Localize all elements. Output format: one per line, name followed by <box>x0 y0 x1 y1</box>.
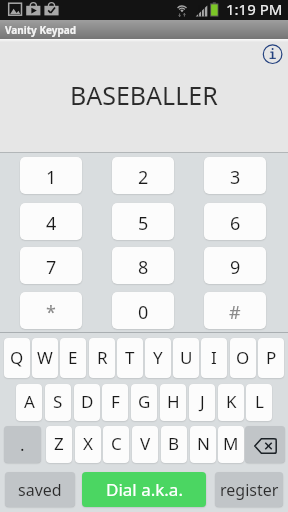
staticText: Y <box>153 346 163 369</box>
button[interactable]: 8 <box>112 247 174 284</box>
button[interactable]: 3 <box>204 157 266 194</box>
staticText: E <box>68 346 78 369</box>
staticText: H <box>167 390 180 413</box>
button[interactable]: H <box>160 384 186 421</box>
staticText: 0 <box>138 300 149 325</box>
staticText: 1 <box>46 165 57 190</box>
button[interactable]: . <box>4 426 41 463</box>
staticText: A <box>24 390 35 413</box>
staticText: V <box>140 432 151 455</box>
staticText: 7 <box>46 255 57 280</box>
button[interactable]: X <box>75 426 101 463</box>
staticText: P <box>266 346 277 369</box>
button[interactable]: T <box>117 338 143 378</box>
staticText: I <box>211 346 217 369</box>
button[interactable]: J <box>189 384 215 421</box>
staticText: * <box>46 300 56 325</box>
staticText: . <box>20 433 25 456</box>
button[interactable]: saved <box>5 472 75 507</box>
staticText: N <box>197 432 210 455</box>
button[interactable]: * <box>20 292 82 329</box>
staticText: saved <box>18 479 62 501</box>
staticText: D <box>81 390 94 413</box>
staticText: Dial a.k.a. <box>106 478 183 501</box>
button[interactable]: B <box>161 426 187 463</box>
staticText: register <box>220 479 279 501</box>
button[interactable]: Y <box>145 338 171 378</box>
staticText: G <box>138 390 151 413</box>
staticText: Z <box>54 432 64 455</box>
staticText: X <box>83 432 93 455</box>
staticText: K <box>226 390 237 413</box>
button[interactable]: V <box>132 426 158 463</box>
button[interactable]: S <box>45 384 71 421</box>
button[interactable]: 2 <box>112 157 174 194</box>
staticText: C <box>111 432 122 455</box>
staticText: F <box>111 390 120 413</box>
staticText: # <box>229 300 241 325</box>
staticText: 5 <box>138 211 149 236</box>
staticText: J <box>200 390 205 413</box>
button[interactable]: Q <box>4 338 30 378</box>
button[interactable]: U <box>173 338 199 378</box>
button[interactable]: L <box>246 384 272 421</box>
button[interactable]: Dial a.k.a. <box>82 472 206 507</box>
staticText: B <box>168 432 180 455</box>
staticText: M <box>223 432 239 455</box>
button[interactable]: Z <box>46 426 72 463</box>
button[interactable]: 5 <box>112 203 174 240</box>
staticText: S <box>53 390 63 413</box>
button[interactable]: N <box>190 426 216 463</box>
button[interactable]: K <box>218 384 244 421</box>
staticText: W <box>37 346 53 369</box>
button[interactable]: # <box>204 292 266 329</box>
button[interactable]: G <box>131 384 157 421</box>
button[interactable]: Info <box>262 43 284 65</box>
button[interactable]: A <box>16 384 42 421</box>
staticText: BASEBALLER <box>70 78 218 112</box>
staticText: O <box>236 346 250 369</box>
button[interactable]: 0 <box>112 292 174 329</box>
button[interactable]: O <box>230 338 256 378</box>
button[interactable]: register <box>215 472 283 507</box>
staticText: U <box>180 346 193 369</box>
button[interactable]: R <box>89 338 115 378</box>
button[interactable]: 7 <box>20 247 82 284</box>
staticText: Q <box>10 346 24 369</box>
staticText: Vanity Keypad <box>5 23 77 37</box>
staticText: 9 <box>230 255 241 280</box>
staticText: R <box>97 346 108 369</box>
button[interactable]: 9 <box>204 247 266 284</box>
button[interactable]: 4 <box>20 203 82 240</box>
staticText: L <box>255 390 264 413</box>
button[interactable]: I <box>201 338 227 378</box>
staticText: 6 <box>230 211 241 236</box>
staticText: 4 <box>46 211 57 236</box>
button[interactable]: C <box>103 426 129 463</box>
button[interactable]: 6 <box>204 203 266 240</box>
staticText: 1:19 PM <box>226 0 283 19</box>
button[interactable]: W <box>32 338 58 378</box>
button[interactable]: P <box>258 338 284 378</box>
button[interactable]: 1 <box>20 157 82 194</box>
staticText: 3 <box>230 165 241 190</box>
staticText: 2 <box>138 165 149 190</box>
button[interactable]: M <box>218 426 244 463</box>
button[interactable]: E <box>60 338 86 378</box>
staticText: 8 <box>138 255 149 280</box>
button[interactable]: Backspace <box>245 426 285 463</box>
button[interactable]: F <box>102 384 128 421</box>
button[interactable]: D <box>74 384 100 421</box>
staticText: T <box>125 346 135 369</box>
